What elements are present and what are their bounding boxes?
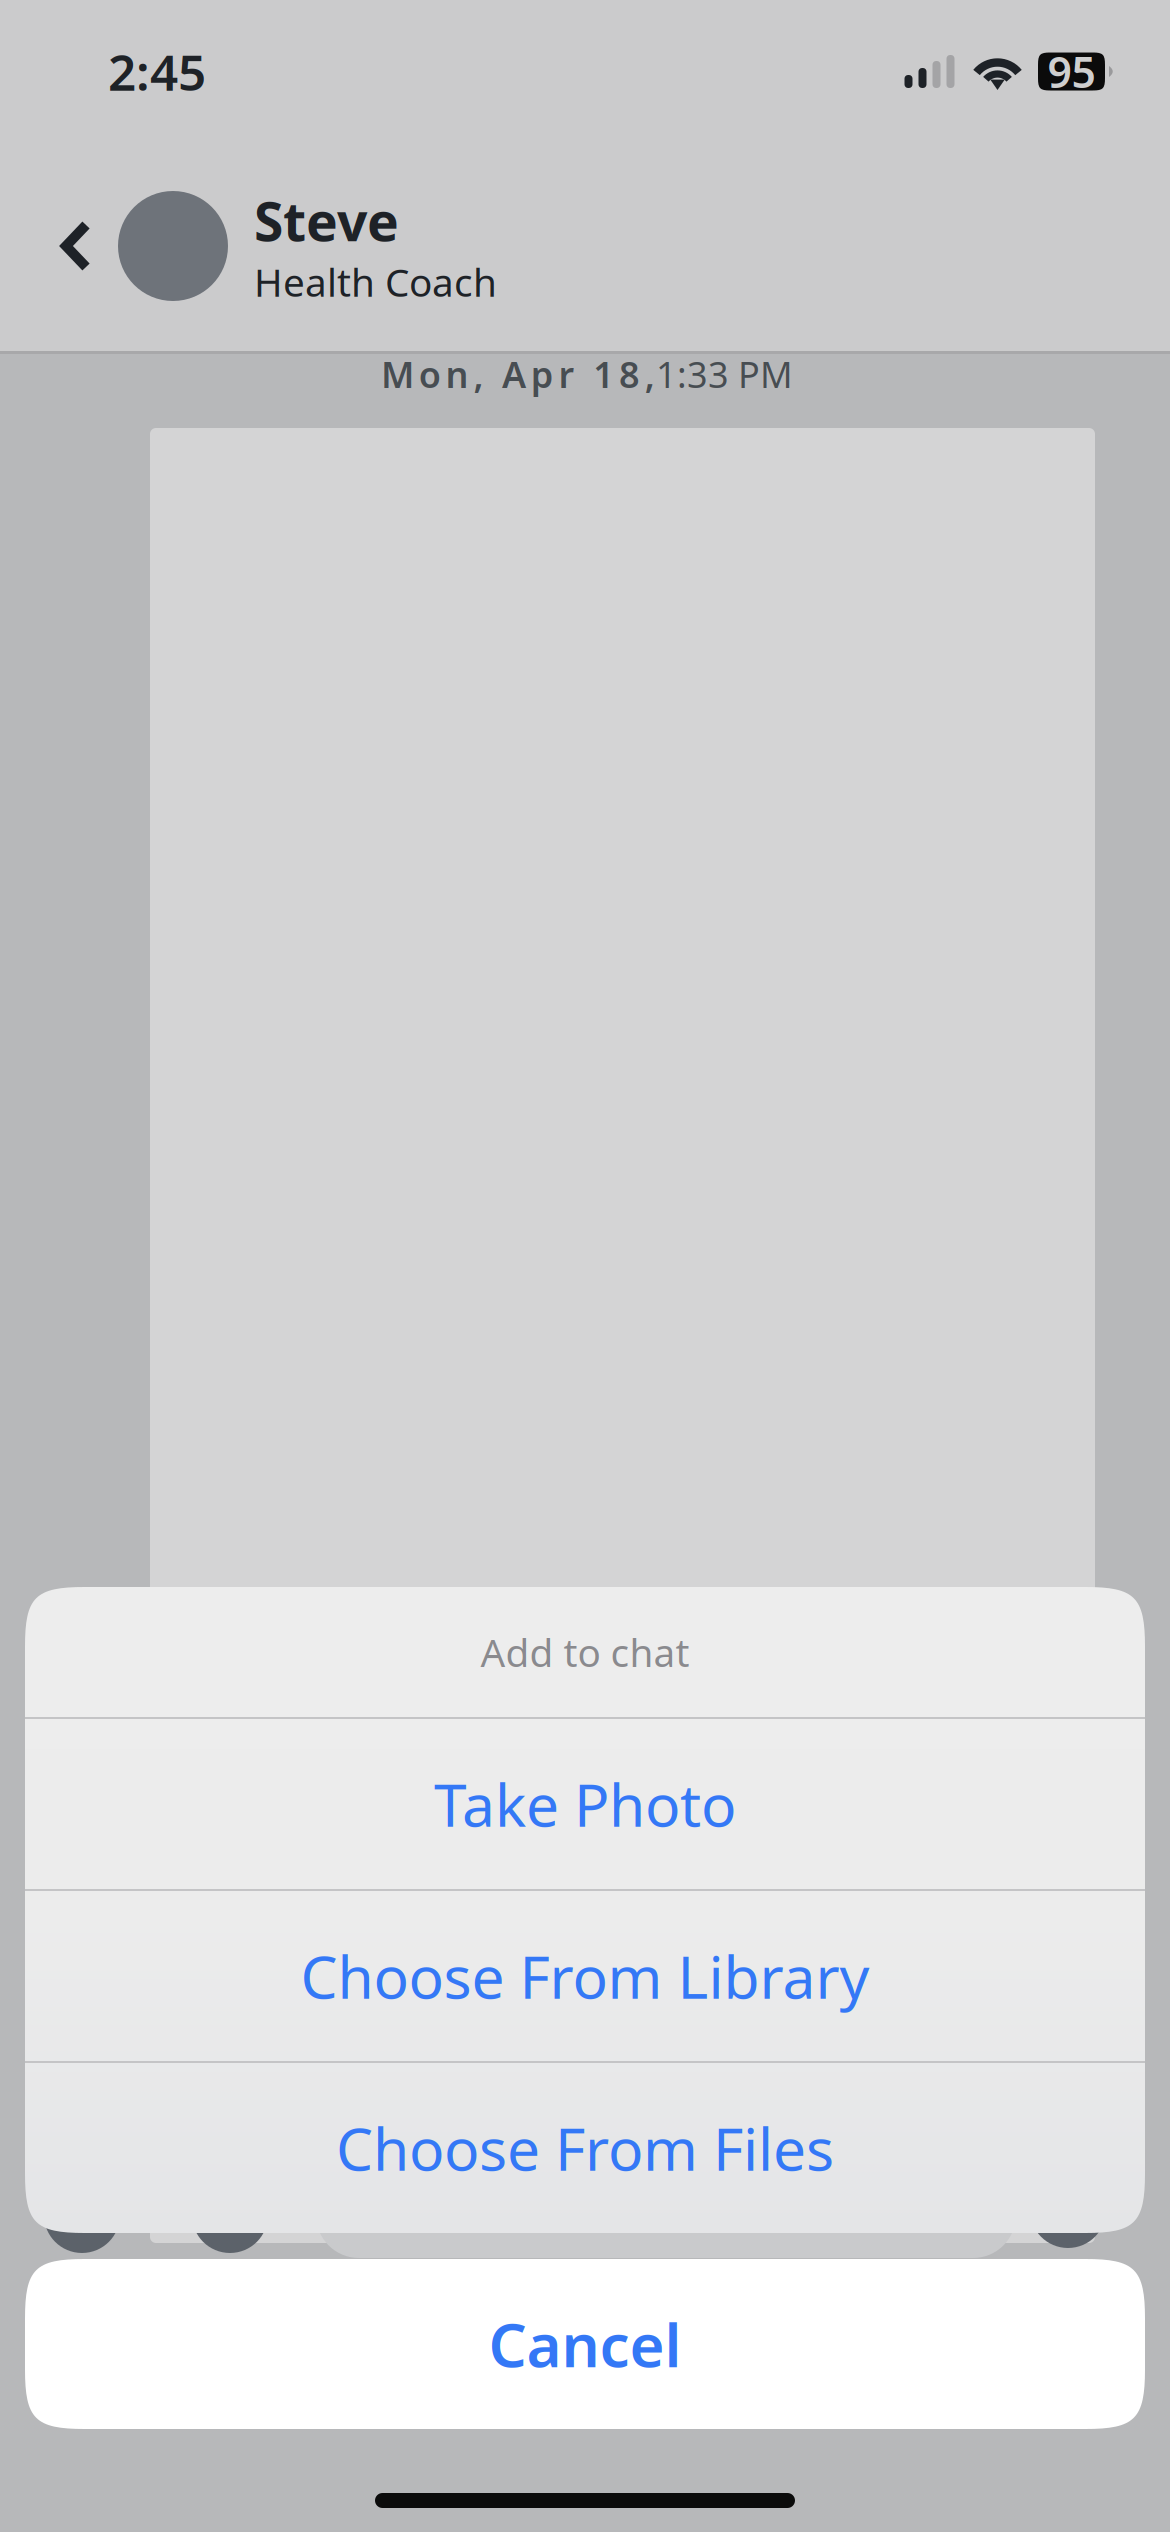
button[interactable]: Cancel	[25, 2259, 1145, 2429]
button[interactable]: Choose From Files	[25, 2063, 1145, 2233]
staticText: Mon, Apr 18,	[381, 350, 655, 398]
staticText: Cancel	[488, 2304, 681, 2384]
staticText: 1:33 PM	[656, 350, 793, 398]
staticText: Health Coach	[254, 256, 497, 307]
staticText: 95	[1047, 43, 1095, 100]
button[interactable]: Choose From Library	[25, 1891, 1145, 2061]
staticText: Choose From Files	[336, 2109, 834, 2187]
staticText: Add to chat	[480, 1626, 689, 1678]
staticText: Take Photo	[434, 1765, 736, 1843]
button[interactable]: Take Photo	[25, 1719, 1145, 1889]
staticText: Choose From Library	[300, 1937, 869, 2015]
staticText: 2:45	[108, 39, 206, 104]
button[interactable]: Back	[36, 191, 116, 301]
staticText: Steve	[254, 185, 399, 256]
